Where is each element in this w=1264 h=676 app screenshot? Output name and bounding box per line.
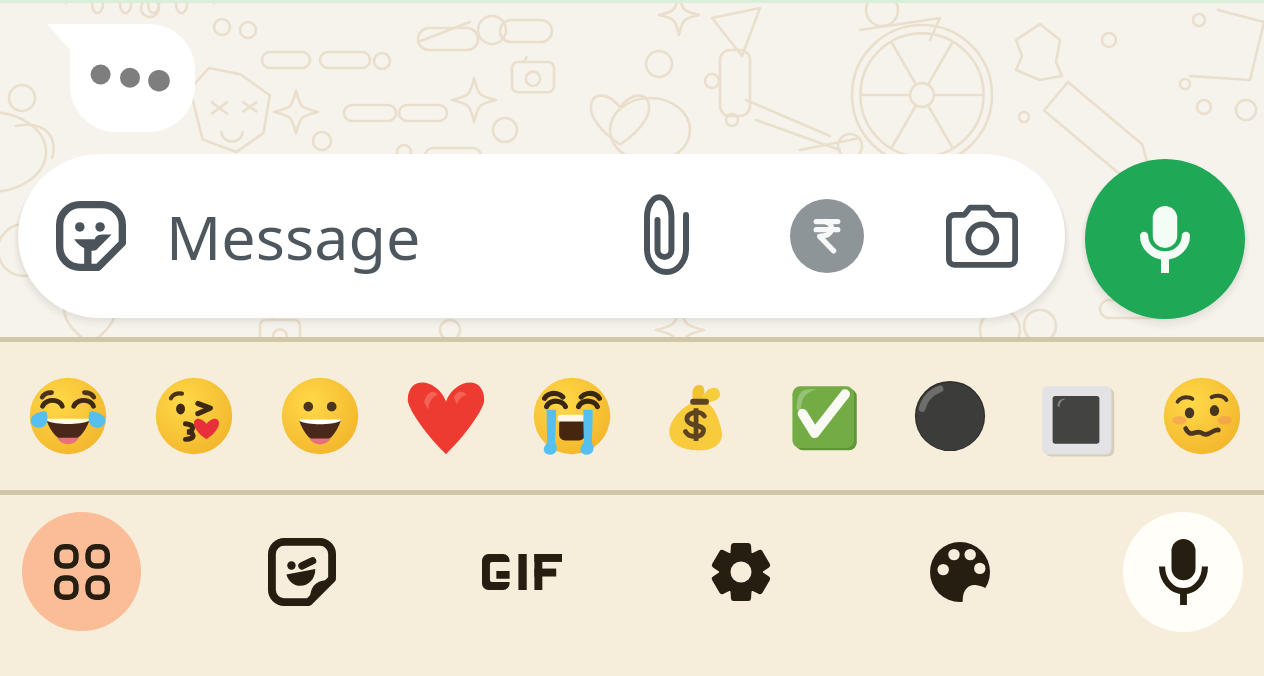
button[interactable]: Face with tears of joy (5, 353, 131, 479)
button[interactable]: Money bag (635, 353, 761, 479)
button[interactable]: Black circle (887, 353, 1013, 479)
button[interactable]: Record voice message (1085, 159, 1245, 319)
button[interactable]: Avatar (912, 524, 1008, 620)
button[interactable]: Stickers (254, 524, 350, 620)
button[interactable]: Voice input (1123, 512, 1243, 632)
button[interactable]: Woozy face (1139, 353, 1264, 479)
button[interactable]: White square (1013, 353, 1139, 479)
button[interactable]: Camera (946, 200, 1018, 272)
button[interactable]: Stickers and emoji (56, 201, 126, 271)
button[interactable]: Settings (693, 524, 789, 620)
button[interactable]: Attach (630, 200, 702, 272)
button[interactable]: Loudly crying face (509, 353, 635, 479)
staticText: Message (166, 195, 421, 278)
button[interactable]: Red heart (383, 353, 509, 479)
button[interactable]: GIF (472, 524, 572, 620)
button[interactable]: Emoji (22, 512, 141, 631)
button[interactable]: Kissing face (131, 353, 257, 479)
button[interactable]: Payment (790, 199, 864, 273)
button[interactable]: Stickers and emoji (18, 154, 1065, 318)
button[interactable]: Check mark (761, 353, 887, 479)
button[interactable]: Grinning face (257, 353, 383, 479)
